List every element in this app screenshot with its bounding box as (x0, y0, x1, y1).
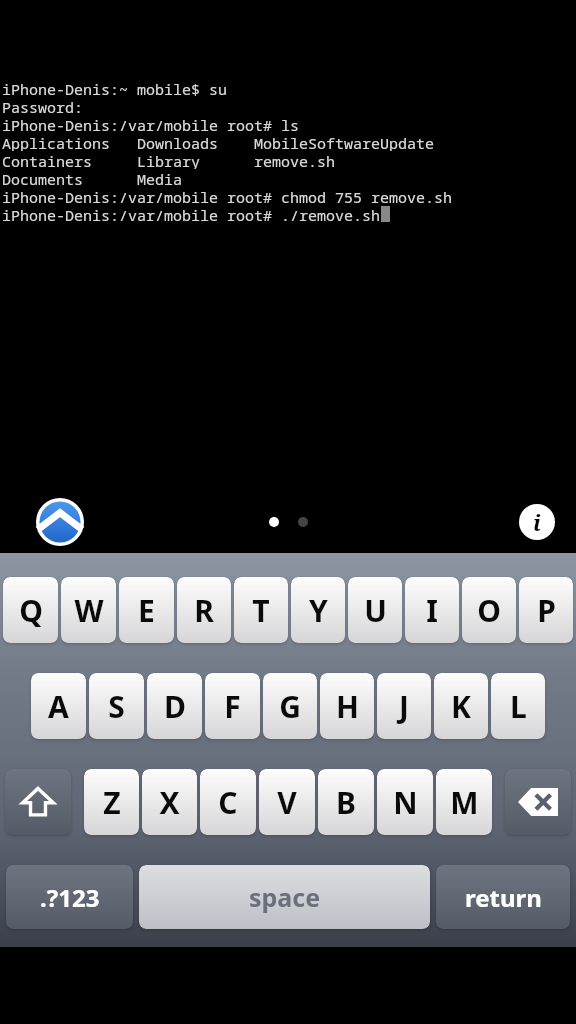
button[interactable]: B (318, 769, 374, 835)
staticText: space (249, 880, 321, 914)
staticText: T (252, 590, 270, 631)
staticText: U (364, 590, 387, 631)
staticText: L (510, 686, 527, 727)
staticText: N (393, 782, 418, 823)
button[interactable]: Previous (36, 498, 84, 546)
button[interactable]: V (259, 769, 315, 835)
staticText: M (450, 782, 479, 823)
staticText: D (164, 686, 186, 727)
button[interactable]: M (436, 769, 492, 835)
button[interactable]: R (177, 577, 231, 643)
staticText: Password: (2, 97, 84, 115)
button[interactable]: J (377, 673, 431, 739)
staticText: C (218, 782, 238, 823)
button[interactable]: H (320, 673, 374, 739)
button[interactable]: X (142, 769, 197, 835)
staticText: E (138, 590, 155, 631)
button[interactable]: return (436, 865, 570, 929)
button[interactable]: Info (519, 504, 555, 540)
staticText: J (399, 686, 409, 727)
button[interactable]: space (139, 865, 430, 929)
staticText: V (277, 782, 297, 823)
staticText: R (194, 590, 214, 631)
button[interactable]: D (147, 673, 202, 739)
staticText: H (336, 686, 359, 727)
staticText: F (224, 686, 241, 727)
button[interactable]: G (263, 673, 317, 739)
button[interactable]: S (89, 673, 144, 739)
button[interactable]: I (405, 577, 459, 643)
button[interactable]: U (348, 577, 402, 643)
staticText: S (108, 686, 125, 727)
staticText: O (477, 590, 501, 631)
staticText: iPhone-Denis:/var/mobile root# chmod 755… (2, 187, 453, 205)
button[interactable]: E (119, 577, 174, 643)
staticText: B (336, 782, 356, 823)
staticText: Q (19, 590, 43, 631)
staticText: Y (309, 590, 328, 631)
staticText: i (533, 507, 541, 537)
button[interactable]: Z (84, 769, 139, 835)
button[interactable]: P (519, 577, 573, 643)
staticText: I (426, 590, 438, 631)
button[interactable]: K (434, 673, 488, 739)
staticText: iPhone-Denis:~ mobile$ su (2, 79, 228, 97)
button[interactable]: N (377, 769, 433, 835)
button[interactable]: W (61, 577, 116, 643)
staticText: Z (103, 782, 121, 823)
button[interactable]: F (205, 673, 260, 739)
staticText: Containers Library remove.sh (2, 151, 336, 169)
staticText: .?123 (40, 881, 100, 914)
staticText: iPhone-Denis:/var/mobile root# ls (2, 115, 300, 133)
staticText: G (279, 686, 301, 727)
button[interactable]: Q (3, 577, 58, 643)
staticText: iPhone-Denis:/var/mobile root# ./remove.… (2, 205, 381, 223)
button[interactable]: Backspace (505, 769, 571, 835)
staticText: Documents Media (2, 169, 183, 187)
button[interactable]: Y (291, 577, 345, 643)
staticText: X (159, 782, 180, 823)
staticText: A (48, 686, 69, 727)
staticText: W (74, 590, 104, 631)
staticText: K (451, 686, 471, 727)
button[interactable]: C (200, 769, 256, 835)
button[interactable]: T (234, 577, 288, 643)
staticText: return (465, 881, 542, 914)
button[interactable]: L (491, 673, 545, 739)
button[interactable]: O (462, 577, 516, 643)
button[interactable]: A (31, 673, 86, 739)
staticText: Applications Downloads MobileSoftwareUpd… (2, 133, 435, 151)
button[interactable]: .?123 (6, 865, 133, 929)
button[interactable]: Shift (5, 769, 71, 835)
staticText: P (537, 590, 556, 631)
